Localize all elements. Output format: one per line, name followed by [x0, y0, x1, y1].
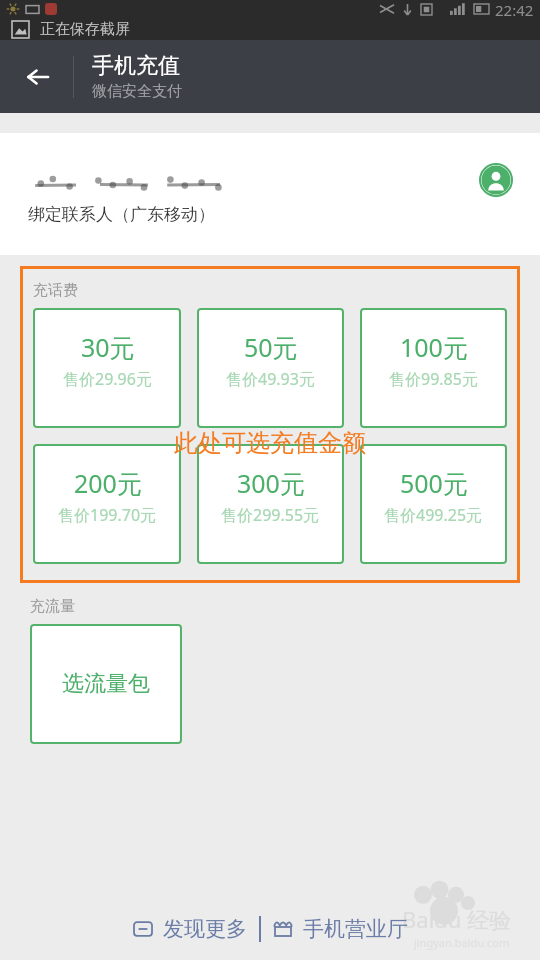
staticText: 正在保存截屏 [40, 20, 130, 39]
button[interactable]: 100元 [360, 308, 507, 428]
staticText: 22:42 [495, 0, 534, 18]
staticText: 售价99.85元 [389, 368, 478, 390]
staticText: jingyan.baidu.com [414, 935, 510, 950]
button[interactable]: 50元 [197, 308, 344, 428]
staticText: 售价29.96元 [63, 368, 152, 390]
staticText: 50元 [244, 330, 298, 364]
staticText: 售价199.70元 [58, 504, 157, 526]
staticText: 30元 [81, 330, 135, 364]
button[interactable]: 200元 [33, 444, 181, 564]
staticText: 500元 [400, 466, 468, 500]
staticText: 200元 [74, 466, 142, 500]
button[interactable]: 返回 [10, 49, 66, 105]
staticText: 发现更多 [163, 916, 247, 942]
button[interactable]: 300元 [197, 444, 344, 564]
staticText: 售价49.93元 [226, 368, 315, 390]
staticText: 300元 [237, 466, 305, 500]
staticText: 100元 [400, 330, 468, 364]
staticText: 绑定联系人（广东移动） [28, 204, 215, 225]
staticText: 充流量 [30, 597, 75, 616]
staticText: 此处可选充值金额 [174, 428, 366, 458]
button[interactable]: 手机营业厅 [261, 908, 420, 950]
staticText: 选流量包 [62, 670, 150, 698]
button[interactable]: 发现更多 [121, 908, 259, 950]
staticText: 微信安全支付 [92, 82, 182, 101]
staticText: 手机营业厅 [303, 916, 408, 942]
button[interactable]: 30元 [33, 308, 181, 428]
staticText: 充话费 [33, 281, 78, 300]
staticText: 手机充值 [92, 52, 180, 80]
staticText: 售价499.25元 [384, 504, 483, 526]
staticText: Baidu 经验 [402, 904, 512, 934]
button[interactable]: 选流量包 [30, 624, 182, 744]
staticText: 售价299.55元 [221, 504, 320, 526]
button[interactable]: 联系人 [474, 158, 518, 202]
button[interactable]: 500元 [360, 444, 507, 564]
